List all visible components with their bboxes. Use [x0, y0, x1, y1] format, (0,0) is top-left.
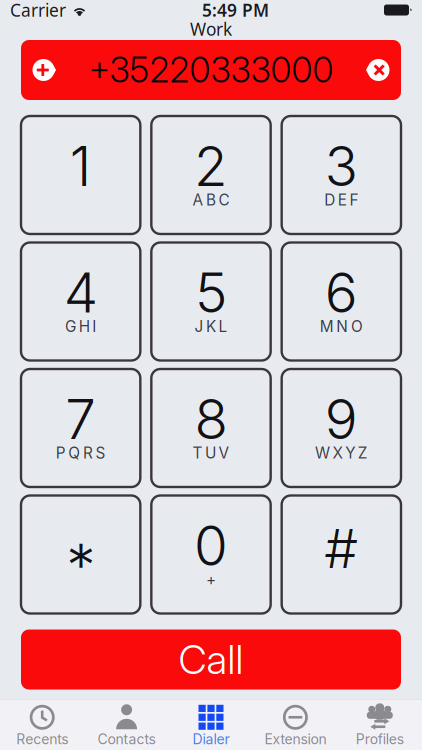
staticText: X — [332, 444, 342, 462]
button[interactable]: 8 — [151, 369, 271, 487]
staticText: Dialer — [192, 731, 229, 748]
button[interactable]: 0 — [151, 495, 271, 613]
staticText: Work — [190, 17, 232, 40]
staticText: V — [219, 444, 230, 462]
staticText: Q — [68, 444, 80, 462]
button[interactable]: Recents — [0, 702, 84, 748]
staticText: G — [65, 317, 76, 336]
staticText: K — [206, 317, 216, 336]
staticText: S — [96, 444, 106, 462]
staticText: Recents — [16, 731, 68, 748]
staticText: T — [192, 444, 202, 462]
staticText: 9 — [325, 386, 358, 452]
staticText: +35220333000 — [88, 49, 333, 91]
staticText: U — [205, 444, 216, 462]
button[interactable]: Call — [0, 629, 422, 689]
staticText: 4 — [64, 259, 98, 325]
staticText: O — [351, 317, 363, 336]
staticText: 5:49 PM — [202, 0, 269, 21]
staticText: J — [194, 317, 203, 336]
staticText: Carrier — [10, 0, 66, 21]
staticText: Y — [345, 444, 355, 462]
staticText: 0 — [194, 512, 228, 578]
staticText: H — [79, 317, 90, 336]
button[interactable]: 6 — [282, 242, 401, 360]
staticText: B — [206, 191, 216, 209]
staticText: E — [338, 191, 347, 209]
button[interactable]: 1 — [21, 116, 140, 234]
staticText: 5 — [195, 259, 227, 325]
staticText: 8 — [194, 386, 227, 452]
button[interactable]: # — [282, 495, 401, 613]
button[interactable]: * — [21, 495, 140, 613]
staticText: I — [92, 317, 96, 336]
staticText: A — [192, 191, 203, 209]
staticText: C — [219, 191, 230, 209]
button[interactable]: 2 — [151, 116, 271, 234]
staticText: L — [219, 317, 228, 336]
staticText: 6 — [325, 259, 358, 325]
button[interactable]: Add contact — [21, 46, 67, 93]
staticText: R — [83, 444, 93, 462]
staticText: Z — [358, 444, 368, 462]
staticText: N — [336, 317, 348, 336]
button[interactable]: Extension — [253, 702, 338, 748]
button[interactable]: 7 — [21, 369, 140, 487]
button[interactable]: Dialer — [169, 702, 253, 748]
staticText: Contacts — [98, 731, 156, 748]
staticText: M — [320, 317, 334, 336]
button[interactable]: 3 — [282, 116, 401, 234]
button[interactable]: 9 — [282, 369, 401, 487]
staticText: W — [315, 444, 330, 462]
button[interactable]: 5 — [151, 242, 271, 360]
staticText: 2 — [194, 133, 228, 199]
staticText: * — [66, 530, 95, 601]
staticText: 7 — [65, 386, 96, 452]
staticText: P — [56, 444, 66, 462]
button[interactable]: 4 — [21, 242, 140, 360]
staticText: 3 — [325, 133, 358, 199]
staticText: Profiles — [356, 731, 404, 748]
staticText: Extension — [264, 731, 326, 748]
staticText: F — [349, 191, 358, 209]
staticText: 1 — [70, 133, 92, 199]
staticText: D — [324, 191, 335, 209]
button[interactable]: Profiles — [338, 702, 422, 748]
staticText: Call — [178, 635, 243, 684]
button[interactable]: Contacts — [84, 702, 169, 748]
staticText: + — [206, 570, 216, 589]
staticText: # — [324, 516, 358, 581]
button[interactable]: Delete — [355, 46, 401, 93]
